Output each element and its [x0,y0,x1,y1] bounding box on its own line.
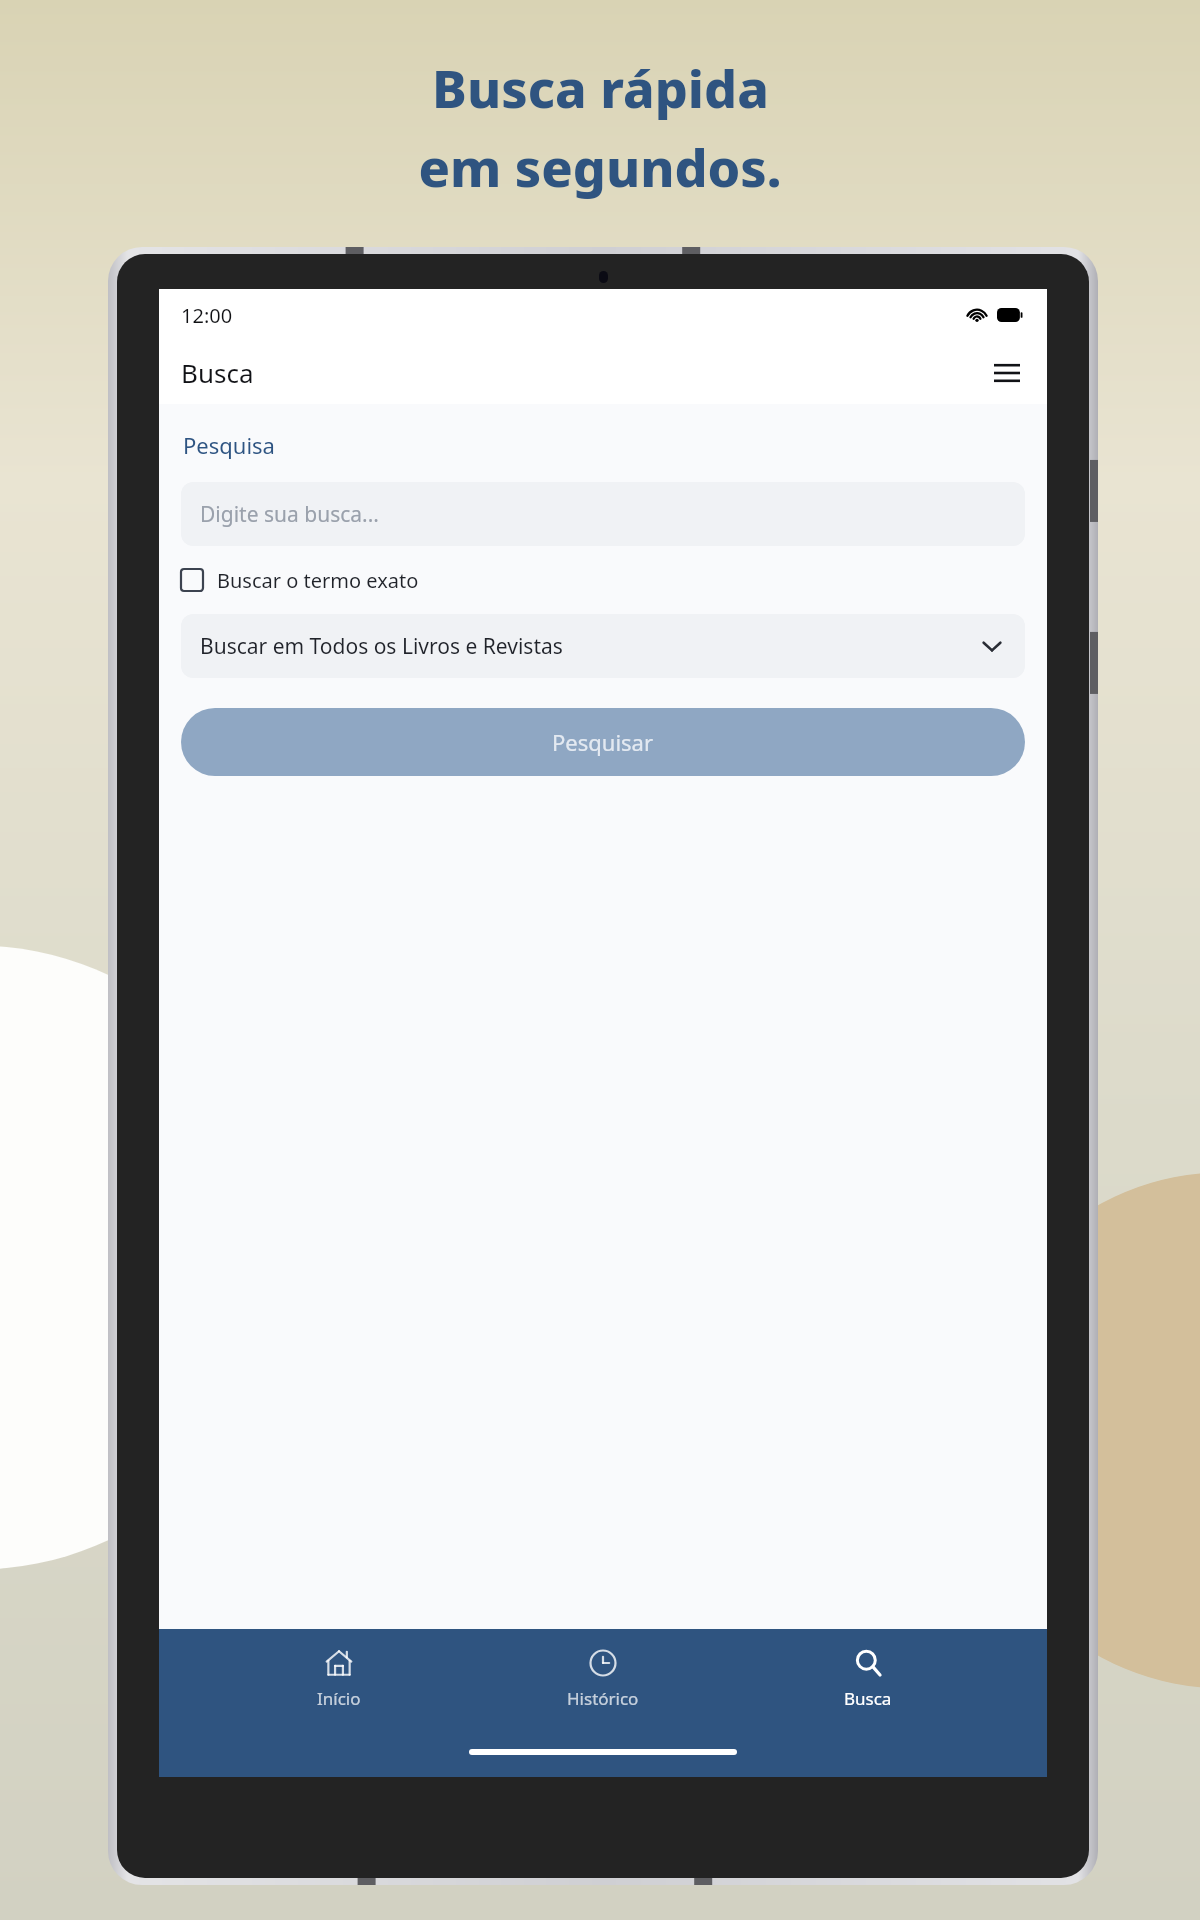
staticText: Histórico [567,1687,639,1710]
button[interactable]: Buscar o termo exato [181,560,419,600]
staticText: 12:00 [181,302,233,329]
staticText: em segundos. [418,131,782,202]
button[interactable]: Início [254,1643,424,1714]
staticText: Buscar em Todos os Livros e Revistas [200,632,563,661]
button[interactable]: Digite sua busca... [181,482,1025,546]
staticText: Busca [844,1687,892,1710]
staticText: Pesquisar [552,727,654,757]
staticText: Pesquisa [183,430,275,460]
button[interactable]: Histórico [518,1643,688,1714]
staticText: Digite sua busca... [200,500,379,529]
button[interactable]: Pesquisar [181,708,1025,776]
staticText: Busca [181,355,254,390]
staticText: Buscar o termo exato [217,567,419,594]
staticText: Início [317,1687,361,1710]
staticText: Busca rápida [432,52,769,123]
button[interactable]: Menu [985,351,1029,395]
button[interactable]: Busca [783,1643,953,1714]
button[interactable]: Buscar em Todos os Livros e Revistas [181,614,1025,678]
